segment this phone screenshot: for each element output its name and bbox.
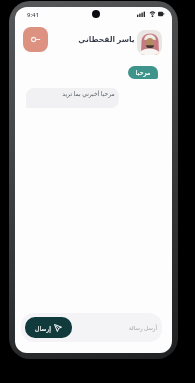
staticText: أرسل رسالة xyxy=(129,324,157,331)
button[interactable]: مرحبا xyxy=(128,66,158,79)
button[interactable] xyxy=(137,30,162,55)
staticText: 9:41 xyxy=(27,11,39,19)
staticText: إرسال xyxy=(35,325,51,332)
button[interactable] xyxy=(23,27,48,52)
button[interactable]: إرسال xyxy=(25,317,72,338)
button[interactable]: أرسل رسالة xyxy=(21,313,162,342)
button[interactable]: مرحبا أخبرني بما تريد xyxy=(26,88,119,108)
staticText: مرحبا أخبرني بما تريد xyxy=(62,90,115,98)
staticText: مرحبا xyxy=(135,69,151,77)
staticText: ياسر القحطاني xyxy=(78,34,135,44)
